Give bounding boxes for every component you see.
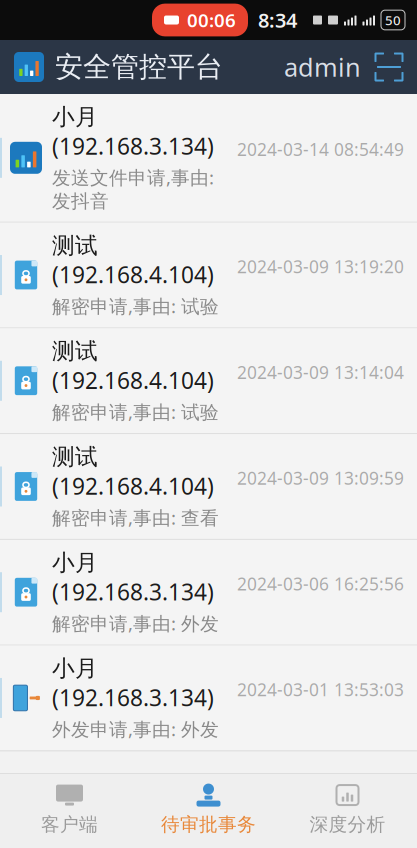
staticText: 解密申请,事由: 外发 [52, 611, 219, 636]
button[interactable]: 待审批事务 [139, 774, 278, 848]
staticText: 00:06 [187, 8, 236, 32]
staticText: 待审批事务 [161, 813, 256, 836]
staticText: 2024-03-09 13:09:59 [237, 466, 404, 489]
staticText: 测试(192.168.4.104) [52, 443, 214, 501]
staticText: 2024-03-09 13:14:04 [237, 361, 404, 384]
staticText: 小月(192.168.3.134) [52, 103, 214, 161]
staticText: admin [284, 50, 361, 84]
button[interactable]: 扫一扫 [361, 53, 417, 81]
staticText: 深度分析 [309, 813, 385, 836]
button[interactable]: 测试(192.168.4.104) [0, 223, 417, 328]
button[interactable]: 深度分析 [278, 774, 417, 848]
staticText: 发送文件申请,事由: 发抖音 [52, 165, 214, 213]
staticText: 安全管控平台 [55, 50, 223, 84]
staticText: 50 [385, 11, 401, 29]
staticText: 解密申请,事由: 试验 [52, 294, 219, 318]
staticText: 2024-03-14 08:54:49 [237, 138, 404, 161]
staticText: 外发申请,事由: 外发 [52, 716, 219, 741]
staticText: 客户端 [41, 813, 98, 836]
staticText: 小月(192.168.3.134) [52, 655, 214, 712]
staticText: 8:34 [258, 7, 297, 33]
staticText: 2024-03-01 13:53:03 [237, 678, 404, 701]
staticText: 小月(192.168.3.134) [52, 549, 214, 607]
staticText: 测试(192.168.4.104) [52, 337, 214, 395]
button[interactable]: 小月(192.168.3.134) [0, 540, 417, 646]
button[interactable]: 测试(192.168.4.104) [0, 434, 417, 540]
button[interactable]: 测试(192.168.4.104) [0, 328, 417, 434]
button[interactable]: 小月(192.168.3.134) [0, 94, 417, 223]
staticText: 2024-03-09 13:19:20 [237, 255, 404, 278]
staticText: 解密申请,事由: 查看 [52, 505, 219, 530]
button[interactable]: admin [284, 42, 361, 92]
staticText: 测试(192.168.4.104) [52, 232, 214, 290]
button[interactable]: 客户端 [0, 774, 139, 848]
staticText: 解密申请,事由: 试验 [52, 399, 219, 424]
button[interactable]: 小月(192.168.3.134) [0, 646, 417, 751]
staticText: 2024-03-06 16:25:56 [237, 572, 404, 595]
